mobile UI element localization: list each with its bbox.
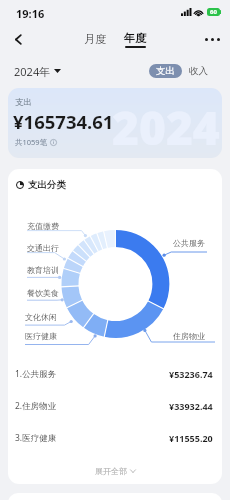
- button[interactable]: Back: [6, 27, 30, 51]
- staticText: 充值缴费: [27, 221, 59, 231]
- staticText: 月度: [84, 32, 106, 46]
- staticText: ¥11555.20: [169, 432, 213, 444]
- staticText: 收入: [189, 65, 208, 77]
- staticText: 2024: [112, 96, 220, 158]
- staticText: 年度: [124, 31, 146, 45]
- staticText: 医疗健康: [25, 331, 57, 341]
- staticText: 60: [210, 8, 217, 16]
- button[interactable]: More options: [200, 27, 224, 51]
- staticText: 支出: [156, 65, 175, 77]
- button[interactable]: 月度: [79, 26, 111, 52]
- button[interactable]: 2024年: [12, 58, 63, 84]
- staticText: 3.医疗健康: [15, 432, 57, 444]
- button[interactable]: 3.医疗健康: [8, 426, 222, 450]
- button[interactable]: 1.公共服务: [8, 362, 222, 386]
- staticText: 交通出行: [27, 243, 59, 253]
- button[interactable]: 展开全部: [8, 459, 222, 483]
- button[interactable]: 2.住房物业: [8, 394, 222, 418]
- button[interactable]: 年度: [119, 26, 151, 52]
- staticText: 2.住房物业: [15, 400, 57, 412]
- staticText: 19:16: [16, 6, 45, 21]
- staticText: 1.公共服务: [15, 368, 57, 380]
- staticText: 展开全部: [95, 466, 127, 476]
- button[interactable]: 收入: [187, 58, 210, 84]
- staticText: 共1059笔: [15, 137, 48, 147]
- staticText: 公共服务: [173, 238, 205, 248]
- staticText: 餐饮美食: [27, 288, 59, 298]
- staticText: 教育培训: [27, 265, 59, 275]
- staticText: ¥53236.74: [169, 368, 213, 380]
- staticText: 支出: [15, 97, 32, 108]
- staticText: ¥33932.44: [169, 400, 213, 412]
- staticText: 2024年: [14, 64, 51, 79]
- button[interactable]: 支出: [149, 64, 182, 78]
- staticText: 住房物业: [173, 331, 205, 341]
- staticText: ¥165734.61: [13, 109, 114, 134]
- staticText: 文化休闲: [25, 312, 57, 322]
- staticText: 支出分类: [28, 179, 66, 191]
